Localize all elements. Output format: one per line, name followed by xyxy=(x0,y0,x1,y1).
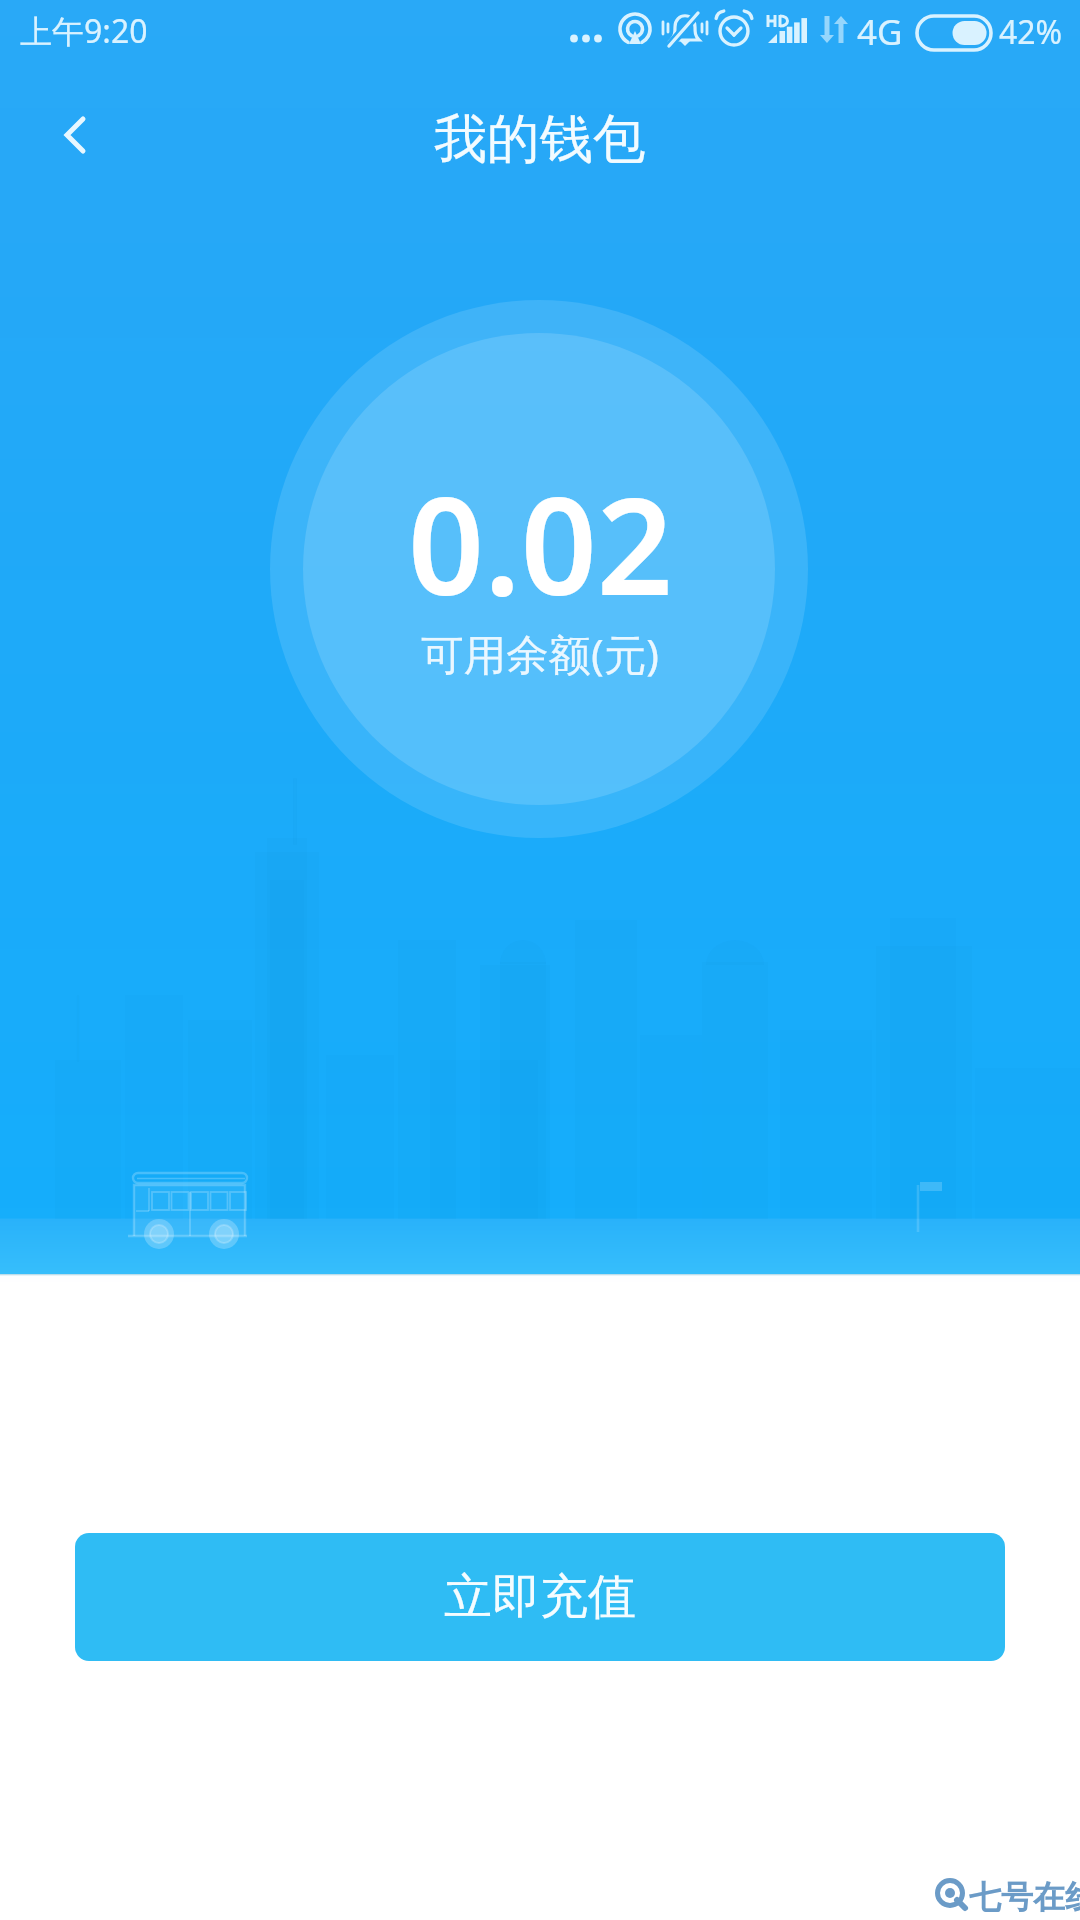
staticText: 42% xyxy=(999,10,1063,54)
staticText: 立即充值 xyxy=(444,1567,636,1627)
button[interactable]: Back xyxy=(32,104,102,174)
staticText: 4G xyxy=(857,8,903,56)
staticText: 七号在线 xyxy=(969,1877,1080,1917)
staticText: 我的钱包 xyxy=(434,106,646,173)
staticText: 可用余额(元) xyxy=(421,625,659,683)
staticText: 0.02 xyxy=(408,453,673,634)
button[interactable]: 立即充值 xyxy=(75,1533,1005,1661)
staticText: 上午9:20 xyxy=(20,9,148,53)
